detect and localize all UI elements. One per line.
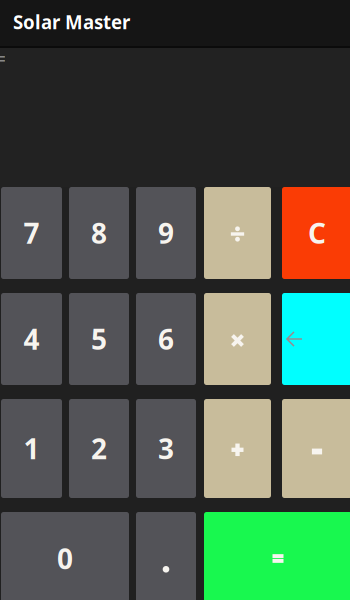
staticText: 9 — [158, 214, 174, 252]
staticText: 2 — [91, 430, 107, 467]
button[interactable]: Backspace — [282, 293, 350, 385]
button[interactable]: 8 — [69, 187, 129, 279]
button[interactable]: Multiply — [204, 293, 271, 385]
button[interactable]: Divide — [204, 187, 271, 279]
staticText: 3 — [158, 430, 174, 467]
button[interactable]: 1 — [1, 399, 62, 498]
button[interactable]: Subtract — [282, 399, 350, 498]
staticText: 6 — [158, 320, 174, 358]
staticText: 4 — [23, 320, 39, 358]
staticText: 5 — [91, 320, 107, 358]
staticText: C — [308, 214, 326, 252]
staticText: 8 — [91, 214, 107, 252]
button[interactable]: 9 — [136, 187, 196, 279]
staticText: 7 — [23, 214, 39, 252]
button[interactable]: 2 — [69, 399, 129, 498]
button[interactable]: Add — [204, 399, 271, 498]
button[interactable]: 6 — [136, 293, 196, 385]
staticText: = — [0, 47, 6, 70]
button[interactable]: 5 — [69, 293, 129, 385]
button[interactable]: Equals — [204, 512, 350, 600]
button[interactable]: 3 — [136, 399, 196, 498]
staticText: 0 — [57, 540, 73, 577]
staticText: Solar Master — [13, 10, 130, 34]
staticText: 1 — [23, 430, 39, 467]
button[interactable]: 0 — [1, 512, 129, 600]
button[interactable]: 4 — [1, 293, 62, 385]
button[interactable]: Clear — [282, 187, 350, 279]
button[interactable]: 7 — [1, 187, 62, 279]
button[interactable]: Decimal point — [136, 512, 196, 600]
